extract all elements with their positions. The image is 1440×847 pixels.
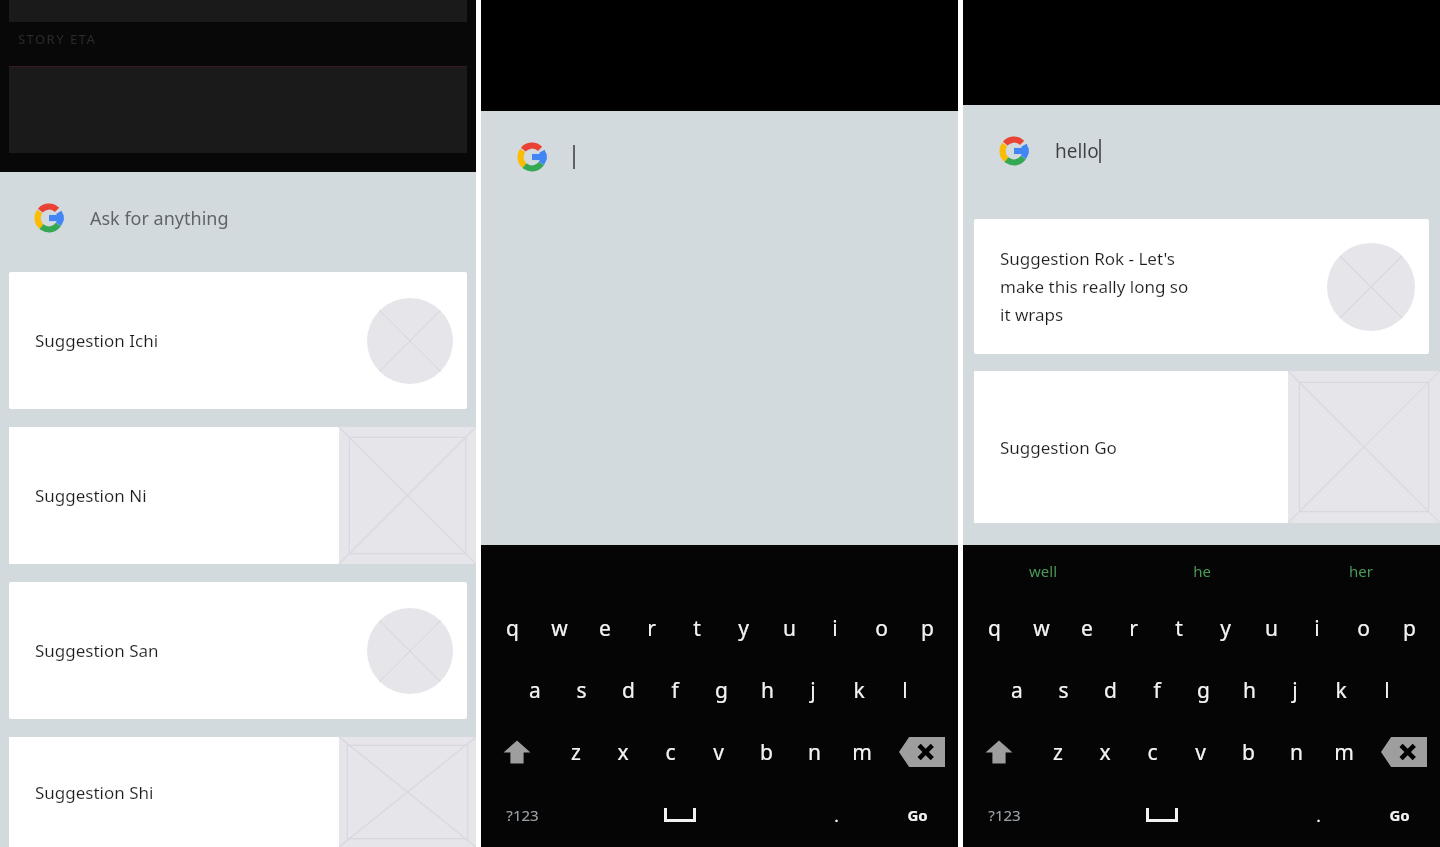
staticText: g <box>1197 676 1210 705</box>
button[interactable]: o <box>858 597 904 659</box>
button[interactable]: b <box>1224 721 1272 783</box>
button[interactable]: s <box>558 659 605 721</box>
button[interactable]: Suggestion Rok - Let's make this really … <box>974 219 1429 354</box>
button[interactable]: l <box>1364 659 1410 721</box>
staticText: o <box>1357 614 1370 643</box>
button[interactable]: u <box>1248 597 1294 659</box>
button[interactable]: s <box>1040 659 1087 721</box>
button[interactable]: w <box>536 597 582 659</box>
button[interactable]: p <box>1386 597 1432 659</box>
staticText: p <box>921 614 934 643</box>
staticText: d <box>1104 676 1117 705</box>
button[interactable]: z <box>1034 721 1081 783</box>
button[interactable]: h <box>744 659 790 721</box>
button[interactable]: Suggestion San <box>9 582 467 719</box>
button[interactable]: Go <box>877 783 958 847</box>
button[interactable]: k <box>1318 659 1364 721</box>
button[interactable]: ?123 <box>481 783 563 847</box>
button[interactable]: j <box>1272 659 1318 721</box>
staticText: Suggestion Shi <box>35 781 154 804</box>
button[interactable]: u <box>766 597 812 659</box>
button[interactable]: ?123 <box>963 783 1045 847</box>
button[interactable]: q <box>971 597 1018 659</box>
button[interactable]: Space <box>563 783 796 847</box>
staticText: z <box>1053 738 1063 767</box>
button[interactable]: f <box>1134 659 1180 721</box>
button[interactable]: Backspace <box>1368 721 1440 783</box>
button[interactable]: a <box>511 659 558 721</box>
button[interactable]: w <box>1018 597 1064 659</box>
button[interactable]: her <box>1281 545 1440 597</box>
staticText: well <box>1029 561 1057 581</box>
button[interactable]: Suggestion Ichi <box>9 272 467 409</box>
button[interactable]: x <box>599 721 646 783</box>
button[interactable]: m <box>1320 721 1368 783</box>
button[interactable]: j <box>790 659 836 721</box>
button[interactable]: he <box>1122 545 1281 597</box>
button[interactable]: f <box>652 659 698 721</box>
staticText: i <box>832 614 838 643</box>
button[interactable]: e <box>1064 597 1110 659</box>
button[interactable]: y <box>720 597 766 659</box>
button[interactable]: g <box>1180 659 1226 721</box>
button[interactable]: Backspace <box>886 721 958 783</box>
staticText: d <box>622 676 635 705</box>
button[interactable]: Suggestion Ni <box>9 427 476 564</box>
button[interactable]: r <box>628 597 674 659</box>
button[interactable]: n <box>1272 721 1320 783</box>
staticText: k <box>853 676 865 705</box>
button[interactable]: Go <box>1359 783 1440 847</box>
button[interactable]: v <box>1176 721 1224 783</box>
staticText: e <box>1081 614 1093 643</box>
button[interactable]: Space <box>1045 783 1278 847</box>
staticText: x <box>617 738 629 767</box>
button[interactable]: Suggestion Go <box>974 371 1440 523</box>
button[interactable]: Shift <box>963 721 1034 783</box>
button[interactable]: x <box>1081 721 1128 783</box>
button[interactable]: t <box>1156 597 1202 659</box>
staticText: h <box>1243 676 1256 705</box>
button[interactable]: . <box>1278 783 1359 847</box>
button[interactable]: Suggestion Shi <box>9 737 476 847</box>
staticText: u <box>1265 614 1278 643</box>
button[interactable]: y <box>1202 597 1248 659</box>
button[interactable]: i <box>812 597 858 659</box>
button[interactable]: p <box>904 597 950 659</box>
button[interactable]: m <box>838 721 886 783</box>
button[interactable]: well <box>963 545 1122 597</box>
button[interactable] <box>481 111 958 203</box>
button[interactable]: g <box>698 659 744 721</box>
button[interactable]: a <box>993 659 1040 721</box>
button[interactable]: b <box>742 721 790 783</box>
button[interactable]: d <box>605 659 652 721</box>
staticText: s <box>576 676 587 705</box>
button[interactable]: t <box>674 597 720 659</box>
staticText: v <box>713 738 724 767</box>
staticText: y <box>1220 614 1231 643</box>
button[interactable]: Ask for anything <box>0 172 476 264</box>
staticText: j <box>810 676 816 705</box>
button[interactable]: q <box>489 597 536 659</box>
button[interactable]: c <box>1128 721 1176 783</box>
button[interactable]: hello <box>963 105 1440 197</box>
button[interactable]: h <box>1226 659 1272 721</box>
button[interactable]: o <box>1340 597 1386 659</box>
button[interactable]: n <box>790 721 838 783</box>
button[interactable]: i <box>1294 597 1340 659</box>
button[interactable]: z <box>552 721 599 783</box>
button[interactable]: . <box>796 783 877 847</box>
staticText: w <box>1033 614 1050 643</box>
button[interactable]: v <box>694 721 742 783</box>
button[interactable]: k <box>836 659 882 721</box>
button[interactable]: c <box>646 721 694 783</box>
button[interactable]: e <box>582 597 628 659</box>
button[interactable]: l <box>882 659 928 721</box>
staticText: c <box>665 738 676 767</box>
button[interactable]: d <box>1087 659 1134 721</box>
button[interactable]: r <box>1110 597 1156 659</box>
button[interactable]: Shift <box>481 721 552 783</box>
staticText: b <box>760 738 773 767</box>
staticText: k <box>1335 676 1347 705</box>
staticText: n <box>1290 738 1303 767</box>
staticText: t <box>1175 614 1183 643</box>
